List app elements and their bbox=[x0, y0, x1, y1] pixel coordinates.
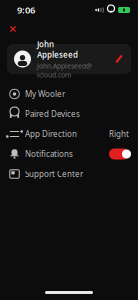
button[interactable]: Support Center bbox=[0, 164, 138, 184]
button[interactable]: Notifications toggle bbox=[109, 148, 129, 159]
staticText: Support Center bbox=[25, 169, 83, 179]
button[interactable]: My Wooler bbox=[0, 84, 138, 104]
staticText: Notifications bbox=[25, 149, 73, 159]
button[interactable]: Close bbox=[2, 20, 24, 38]
staticText: App Direction bbox=[25, 129, 77, 139]
staticText: John Appleseed bbox=[37, 39, 78, 60]
staticText: John.Appleseed@icloud.com bbox=[37, 61, 92, 79]
staticText: My Wooler bbox=[25, 89, 65, 99]
staticText: Right bbox=[109, 129, 129, 139]
button[interactable]: App Direction bbox=[0, 124, 138, 144]
staticText: Paired Devices bbox=[25, 109, 80, 119]
staticText: 9:06 bbox=[17, 4, 35, 16]
button[interactable]: Paired Devices bbox=[0, 104, 138, 124]
button[interactable]: Notifications bbox=[0, 144, 138, 164]
button[interactable]: John Appleseed bbox=[7, 44, 131, 74]
